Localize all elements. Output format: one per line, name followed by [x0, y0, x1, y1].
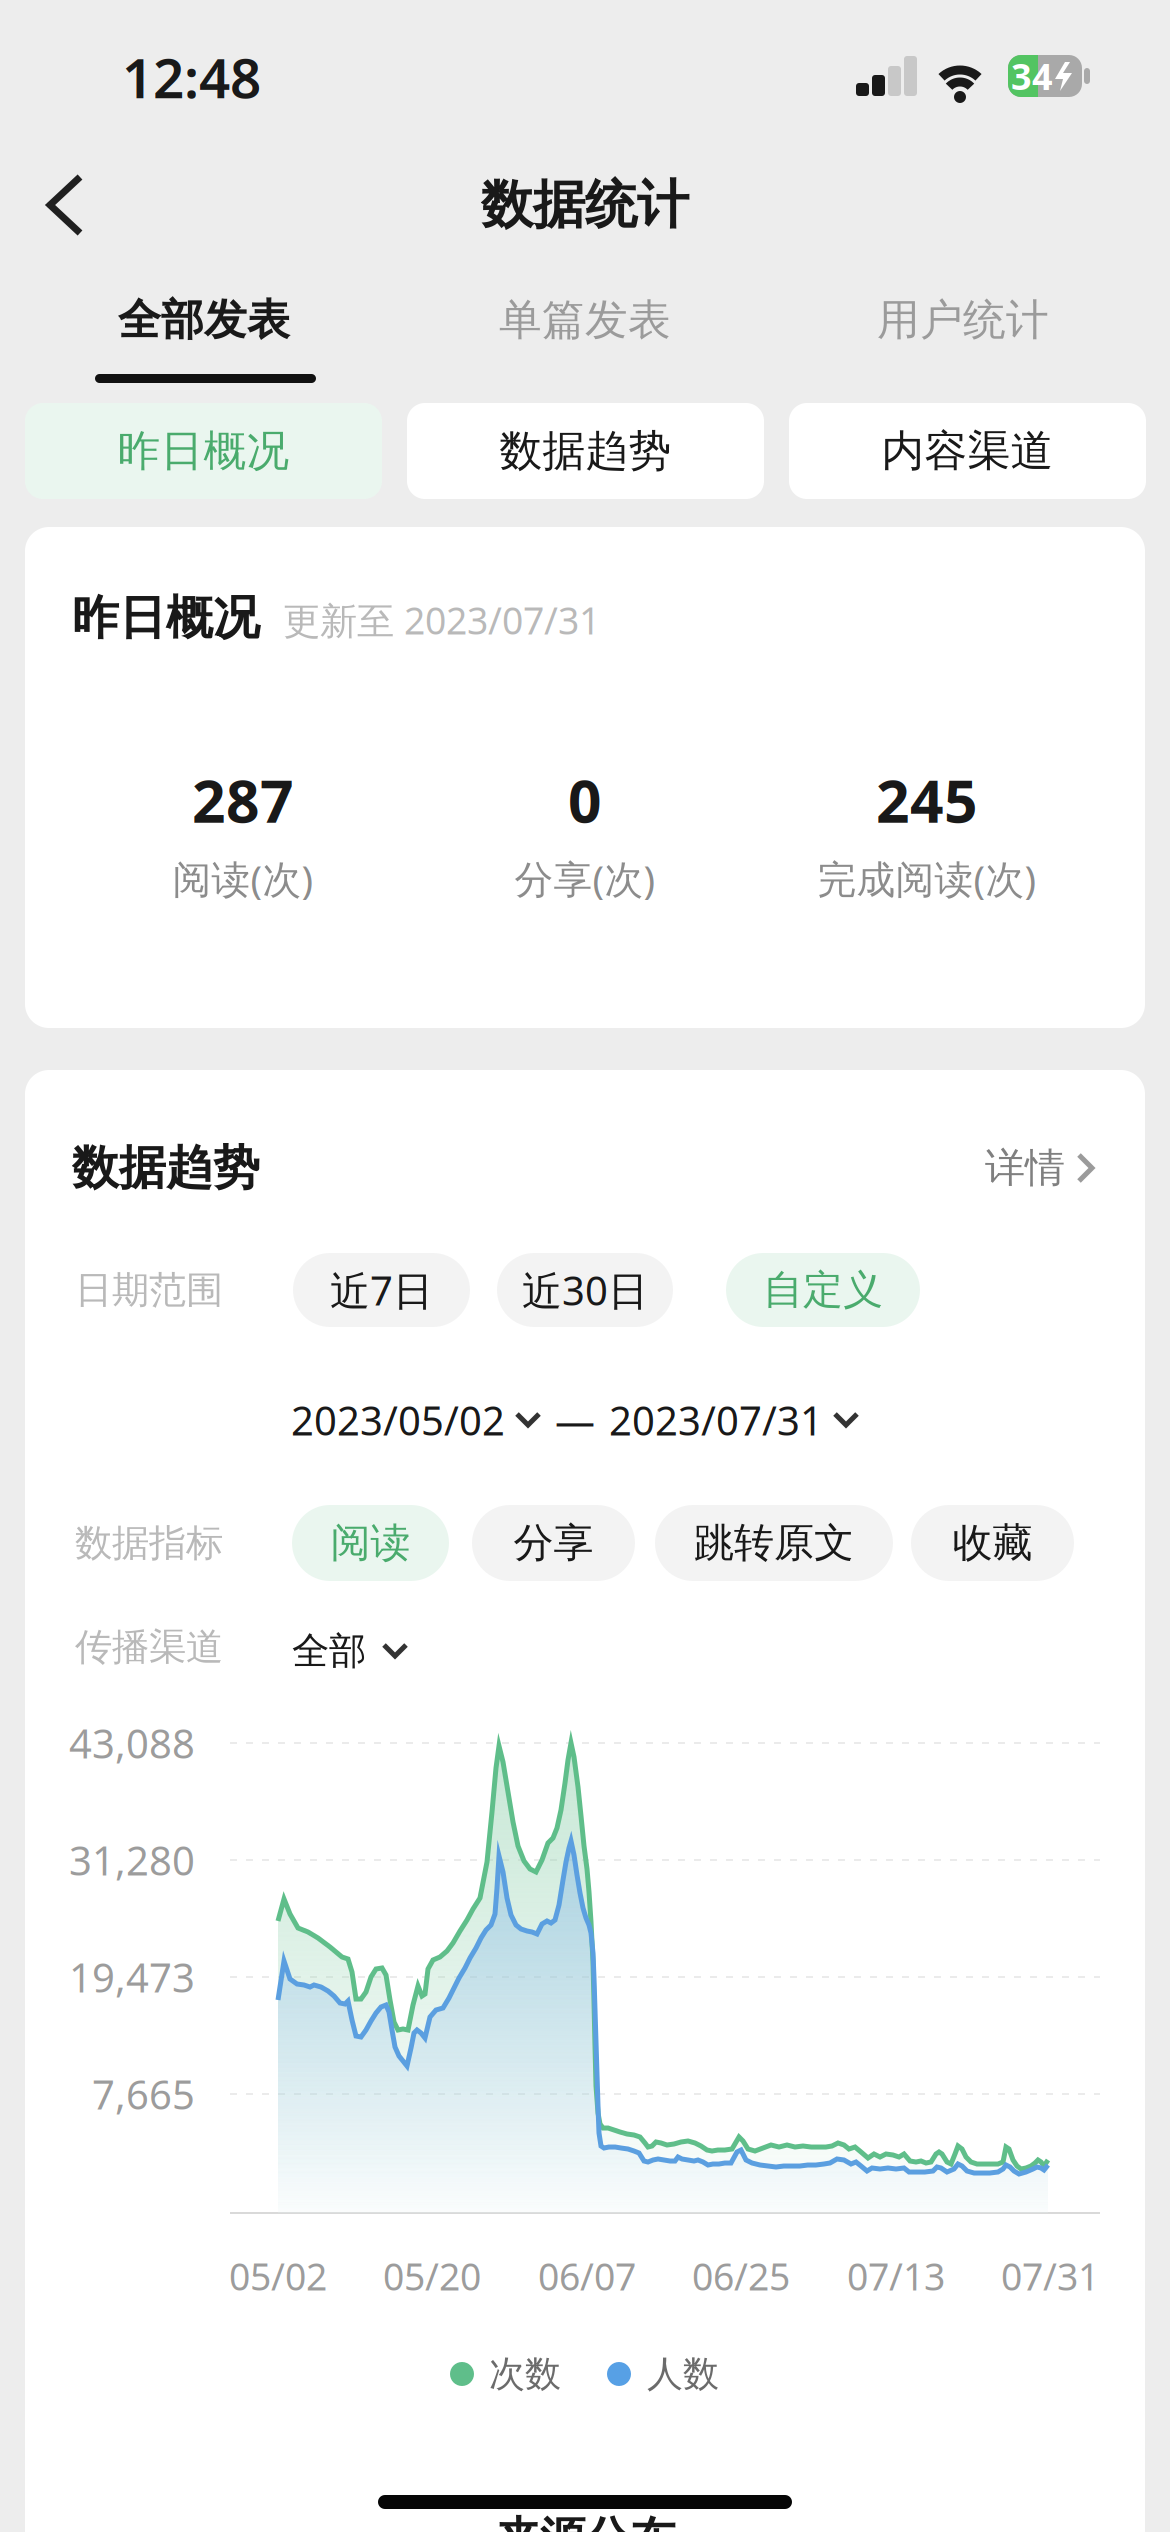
button[interactable]: 近7日: [293, 1253, 470, 1327]
button[interactable]: 收藏: [911, 1505, 1074, 1581]
staticText: 日期范围: [75, 1267, 223, 1313]
staticText: 数据指标: [75, 1520, 223, 1566]
staticText: 单篇发表: [499, 294, 671, 346]
button[interactable]: 自定义: [726, 1253, 920, 1327]
staticText: 分享(次): [514, 853, 655, 904]
staticText: 245: [876, 761, 978, 839]
staticText: 数据统计: [481, 173, 689, 237]
staticText: 近7日: [330, 1263, 433, 1316]
staticText: 07/13: [847, 2251, 945, 2301]
staticText: 287: [192, 761, 294, 839]
staticText: 跳转原文: [694, 1518, 854, 1567]
staticText: 43,088: [69, 1716, 195, 1769]
staticText: 详情: [985, 1143, 1065, 1192]
button[interactable]: 近30日: [497, 1253, 673, 1327]
button[interactable]: 全部发表: [34, 288, 374, 352]
staticText: 完成阅读(次): [817, 853, 1036, 904]
staticText: 昨日概况: [117, 425, 289, 477]
staticText: 更新至 2023/07/31: [283, 595, 600, 645]
staticText: 数据趋势: [72, 1139, 260, 1197]
button[interactable]: 阅读: [292, 1505, 449, 1581]
staticText: 全部: [292, 1628, 366, 1674]
staticText: 07/31: [1001, 2251, 1099, 2301]
staticText: 昨日概况: [72, 589, 260, 647]
staticText: 用户统计: [877, 294, 1049, 346]
button[interactable]: 详情: [985, 1138, 1097, 1198]
button[interactable]: Back: [28, 169, 118, 241]
staticText: 34: [1011, 52, 1053, 100]
staticText: 次数: [489, 2352, 561, 2396]
staticText: 近30日: [522, 1263, 648, 1316]
staticText: 人数: [647, 2352, 719, 2396]
button[interactable]: 跳转原文: [655, 1505, 893, 1581]
button[interactable]: 全部: [292, 1621, 408, 1681]
staticText: · 来源分布 ·: [470, 2507, 700, 2532]
staticText: 数据趋势: [499, 425, 671, 477]
button[interactable]: 数据趋势: [407, 403, 764, 499]
staticText: 阅读(次): [172, 853, 313, 904]
staticText: 分享: [513, 1518, 593, 1567]
staticText: 全部发表: [118, 294, 290, 346]
button[interactable]: 单篇发表: [415, 288, 755, 352]
staticText: 阅读: [330, 1518, 410, 1567]
staticText: 内容渠道: [881, 425, 1053, 477]
staticText: 05/02: [229, 2251, 327, 2301]
staticText: 收藏: [952, 1518, 1032, 1567]
staticText: 19,473: [69, 1950, 195, 2003]
button[interactable]: 2023/07/31: [609, 1390, 859, 1450]
button[interactable]: 分享: [472, 1505, 635, 1581]
staticText: 7,665: [92, 2067, 195, 2120]
button[interactable]: 昨日概况: [25, 403, 382, 499]
staticText: 06/25: [692, 2251, 790, 2301]
staticText: 传播渠道: [75, 1624, 223, 1670]
button[interactable]: 2023/05/02: [291, 1390, 541, 1450]
staticText: 06/07: [538, 2251, 636, 2301]
staticText: 12:48: [122, 41, 261, 113]
staticText: 2023/05/02: [291, 1393, 505, 1446]
staticText: 2023/07/31: [609, 1393, 823, 1446]
button[interactable]: 内容渠道: [789, 403, 1146, 499]
staticText: 31,280: [69, 1833, 195, 1886]
button[interactable]: 用户统计: [793, 288, 1133, 352]
staticText: 0: [568, 761, 602, 839]
staticText: 自定义: [763, 1265, 883, 1314]
staticText: —: [555, 1393, 595, 1446]
staticText: 05/20: [383, 2251, 481, 2301]
